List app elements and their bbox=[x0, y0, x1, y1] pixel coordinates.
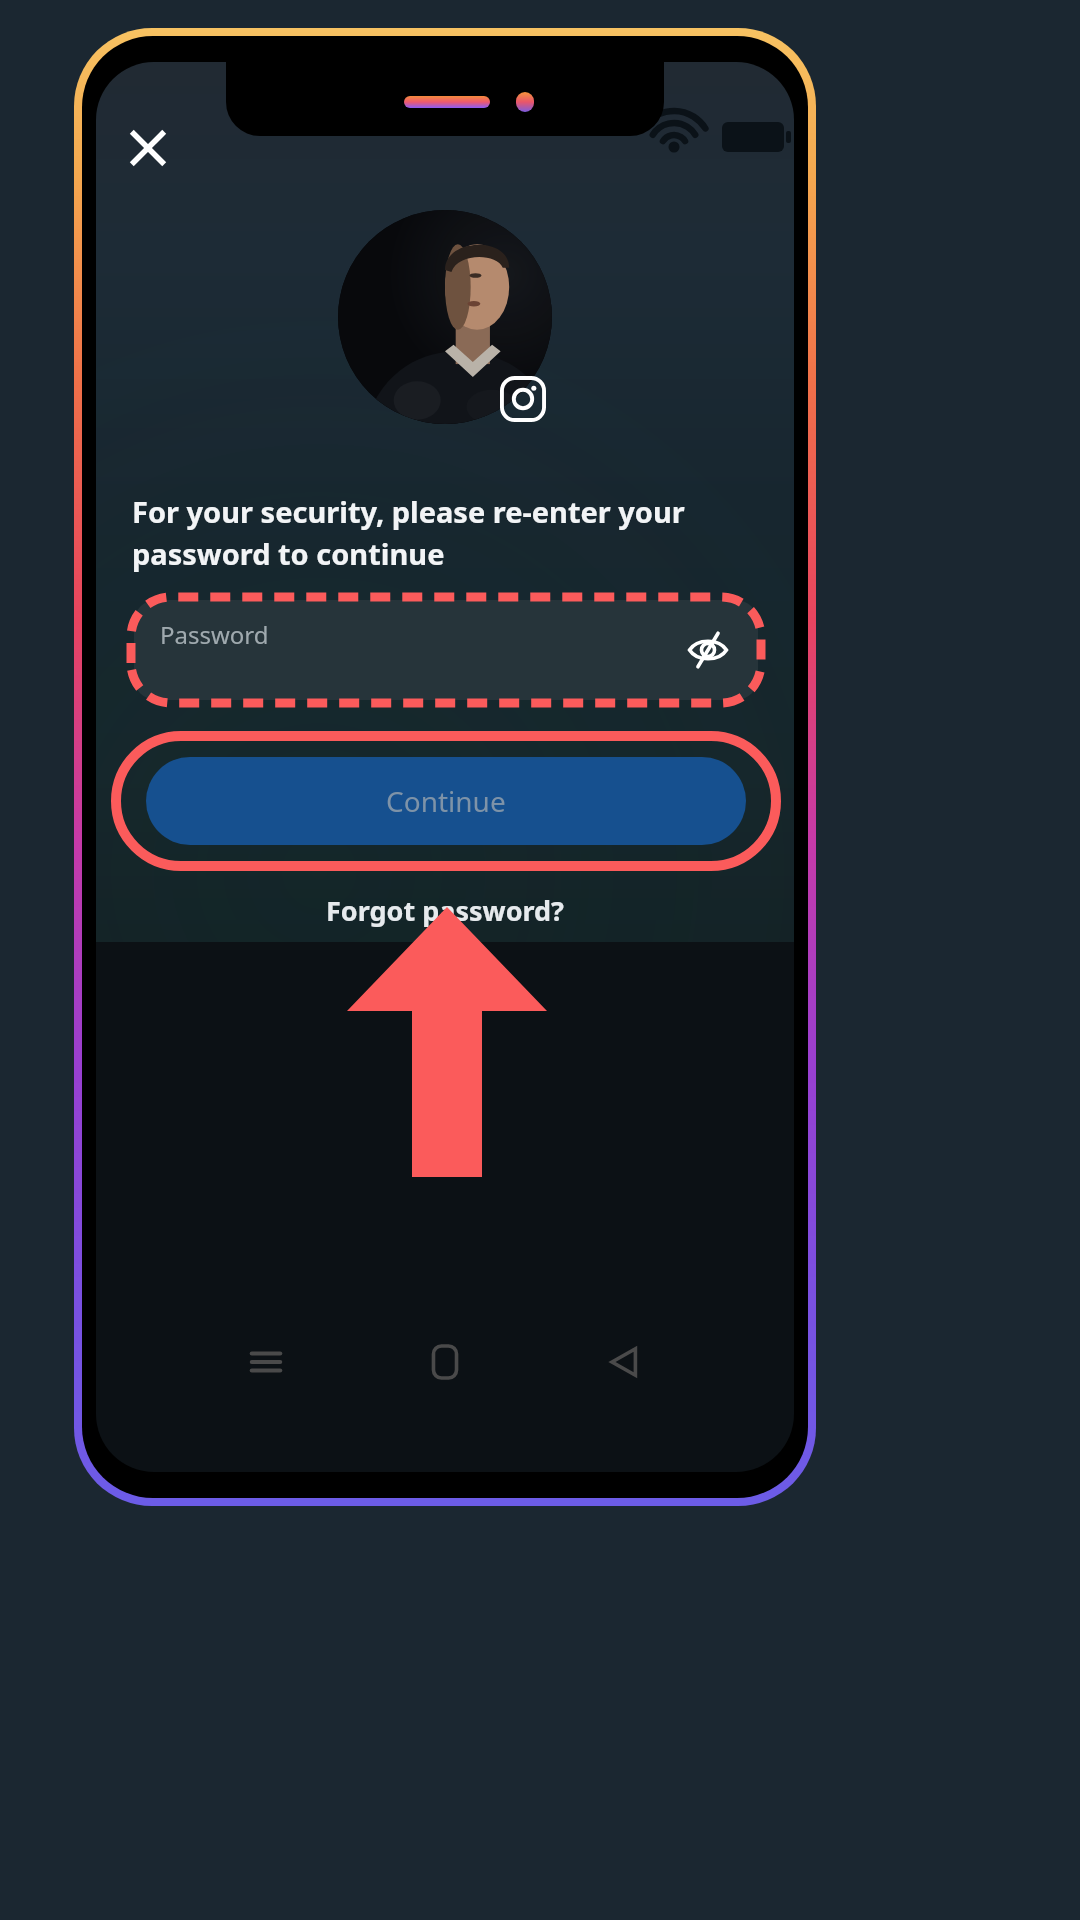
button[interactable]: Back bbox=[586, 1324, 662, 1400]
staticText: Continue bbox=[386, 782, 506, 820]
button[interactable]: Password bbox=[134, 600, 758, 700]
staticText: Password bbox=[160, 618, 269, 651]
button[interactable]: Instagram bbox=[496, 372, 550, 426]
button[interactable]: Close bbox=[114, 114, 182, 182]
button[interactable]: Recent apps bbox=[228, 1324, 304, 1400]
button[interactable]: Show password bbox=[680, 622, 736, 678]
button[interactable]: Continue bbox=[146, 757, 746, 845]
staticText: For your security, please re-enter your … bbox=[132, 492, 752, 573]
button[interactable]: Home bbox=[407, 1324, 483, 1400]
staticText: Forgot password? bbox=[326, 892, 564, 929]
button[interactable]: Forgot password? bbox=[265, 882, 625, 938]
